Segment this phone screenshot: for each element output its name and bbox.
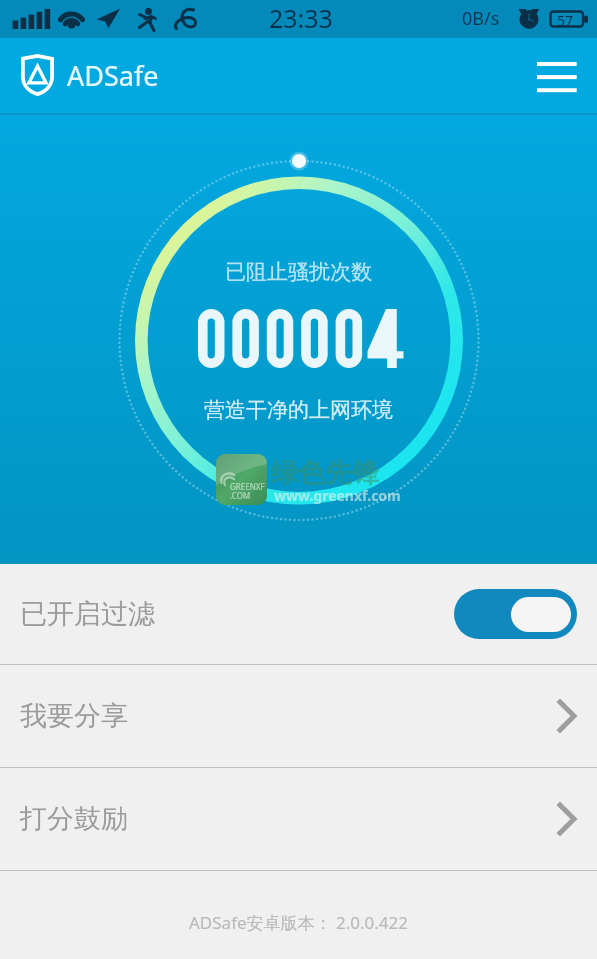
staticText: .COM [230, 490, 251, 501]
staticText: 绿色先锋 [271, 456, 379, 490]
staticText: ADSafe [67, 57, 159, 94]
staticText: 已开启过滤 [20, 597, 155, 631]
staticText: ADSafe安卓版本： 2.0.0.422 [189, 911, 409, 934]
staticText: 已阻止骚扰次数 [225, 259, 372, 285]
button[interactable]: 已开启过滤 [0, 564, 597, 664]
button[interactable]: Menu [526, 47, 588, 105]
staticText: 我要分享 [20, 699, 128, 733]
staticText: GREENXF [230, 481, 265, 492]
staticText: 0B/s [462, 6, 500, 31]
staticText: 23:33 [269, 1, 333, 35]
staticText: 57 [557, 11, 574, 30]
button[interactable]: 打分鼓励 [0, 768, 597, 870]
staticText: 营造干净的上网环境 [204, 397, 393, 423]
button[interactable]: 我要分享 [0, 665, 597, 767]
staticText: 打分鼓励 [20, 802, 128, 836]
staticText: www.greenxf.com [274, 486, 401, 505]
